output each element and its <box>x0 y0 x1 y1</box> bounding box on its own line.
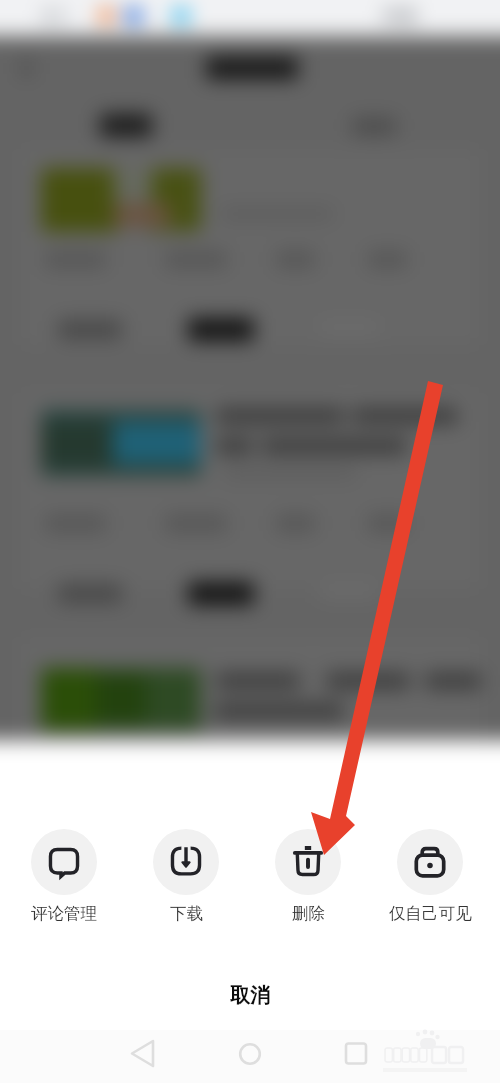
button[interactable]: 下载 <box>125 829 247 924</box>
button[interactable]: 取消 <box>0 973 500 1017</box>
staticText: 评论管理 <box>31 903 97 924</box>
button[interactable]: 仅自己可见 <box>369 829 491 924</box>
button[interactable]: Back <box>110 1030 176 1083</box>
button[interactable]: 评论管理 <box>3 829 125 924</box>
staticText: 删除 <box>292 903 325 924</box>
staticText: 下载 <box>170 903 203 924</box>
button[interactable]: Home <box>217 1030 283 1083</box>
button[interactable]: 删除 <box>247 829 369 924</box>
staticText: 仅自己可见 <box>389 903 472 924</box>
button[interactable]: Recent apps <box>323 1030 389 1083</box>
staticText: 取消 <box>230 983 270 1008</box>
